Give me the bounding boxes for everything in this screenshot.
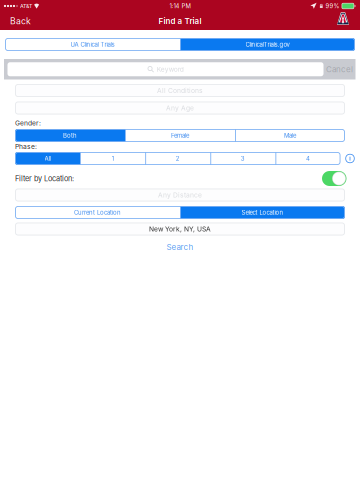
button[interactable]: About trial phases — [345, 153, 355, 163]
staticText: Back — [10, 16, 31, 26]
button[interactable]: 1 — [80, 152, 145, 165]
staticText: Filter by Location: — [15, 174, 74, 183]
button[interactable]: 4 — [275, 152, 340, 165]
staticText: Search — [166, 242, 193, 252]
staticText: New York, NY, USA — [149, 225, 211, 233]
staticText: All — [44, 155, 50, 162]
button[interactable]: Any Distance — [15, 188, 345, 201]
button[interactable]: ClinicalTrials.gov — [180, 38, 355, 51]
staticText: Select Location — [241, 209, 283, 216]
staticText: Any Age — [166, 104, 194, 112]
staticText: Any Distance — [158, 191, 202, 199]
staticText: 1:14 PM — [169, 2, 190, 10]
staticText: Phase: — [15, 142, 37, 151]
staticText: Cancel — [326, 64, 353, 74]
staticText: All Conditions — [157, 86, 203, 95]
staticText: ClinicalTrials.gov — [245, 41, 289, 48]
button[interactable]: UA Clinical Trials — [5, 38, 180, 51]
button[interactable]: Current Location — [15, 206, 180, 219]
staticText: Find a Trial — [158, 16, 201, 26]
button[interactable]: Cancel — [323, 59, 355, 79]
staticText: Keyword — [157, 65, 184, 73]
staticText: AT&T — [20, 3, 32, 9]
button[interactable]: Search — [15, 243, 345, 251]
button[interactable]: Back — [0, 12, 39, 30]
staticText: Current Location — [74, 209, 121, 216]
staticText: 4 — [306, 155, 310, 162]
staticText: Both — [63, 132, 77, 139]
staticText: Male — [284, 132, 296, 139]
staticText: 1 — [112, 155, 114, 162]
button[interactable]: Female — [125, 129, 235, 142]
button[interactable]: 3 — [210, 152, 275, 165]
button[interactable]: New York, NY, USA — [15, 222, 345, 235]
button[interactable]: Any Age — [15, 101, 345, 114]
button[interactable]: Male — [235, 129, 345, 142]
staticText: Female — [171, 132, 189, 139]
staticText: UA Clinical Trials — [70, 41, 114, 48]
staticText: 3 — [241, 155, 245, 162]
button[interactable]: Both — [15, 129, 125, 142]
staticText: Gender: — [15, 119, 41, 127]
button[interactable]: Select Location — [180, 206, 345, 219]
button[interactable]: 2 — [145, 152, 210, 165]
staticText: 2 — [176, 155, 180, 162]
button[interactable]: Filter by location — [322, 171, 346, 186]
button[interactable]: All — [15, 152, 80, 165]
button[interactable]: All Conditions — [15, 84, 345, 97]
button[interactable]: University of Arizona — [337, 12, 360, 30]
staticText: 99% — [325, 2, 339, 10]
